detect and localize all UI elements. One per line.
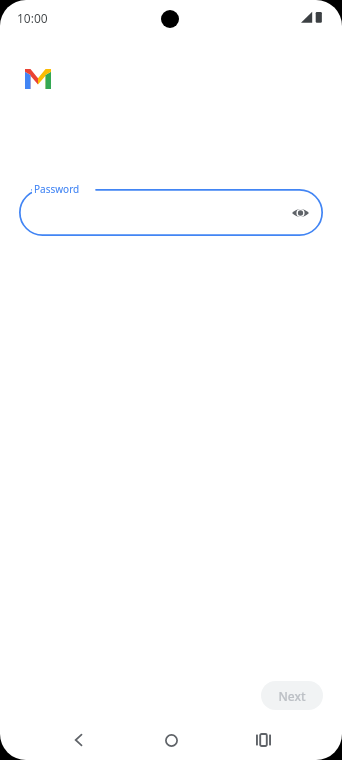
staticText: Next	[278, 688, 306, 704]
button[interactable]: Password	[19, 189, 323, 236]
button[interactable]: Home	[152, 725, 190, 755]
button[interactable]: Recent apps	[244, 725, 282, 755]
button[interactable]: Show password	[286, 199, 314, 227]
button[interactable]: Back	[60, 725, 98, 755]
staticText: 10:00	[17, 10, 48, 26]
button[interactable]: Next	[261, 681, 323, 710]
staticText: Password	[34, 182, 80, 196]
